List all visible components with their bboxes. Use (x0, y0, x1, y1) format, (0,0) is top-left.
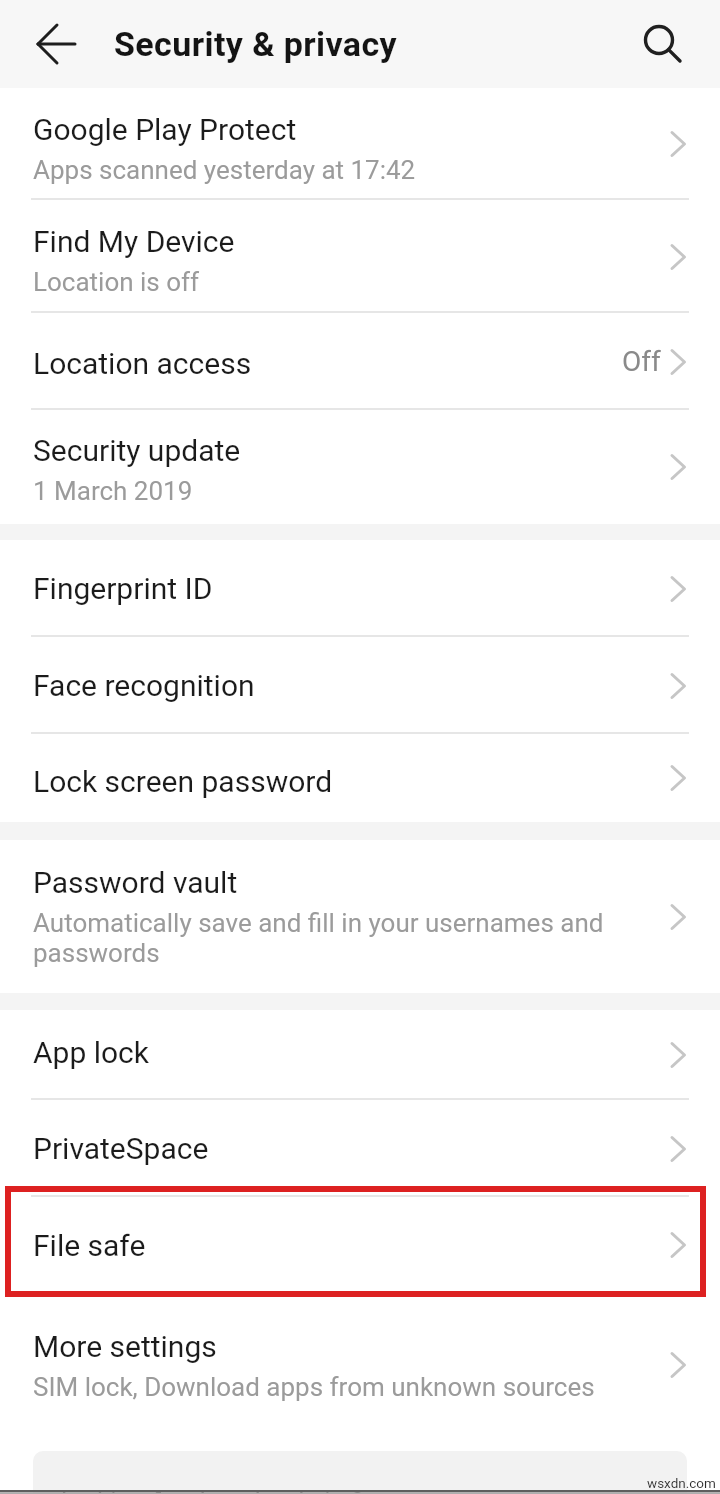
staticText: Automatically save and fill in your user… (33, 908, 604, 968)
staticText: 1 March 2019 (33, 476, 193, 506)
button[interactable]: File safe (0, 1197, 720, 1293)
staticText: Fingerprint ID (33, 571, 213, 606)
button[interactable]: More settings (0, 1293, 720, 1437)
staticText: Off (622, 345, 661, 378)
staticText: Password vault (33, 865, 238, 900)
staticText: Security & privacy (114, 24, 398, 64)
staticText: wsxdn.com (647, 1475, 716, 1491)
staticText: Find My Device (33, 224, 235, 259)
button[interactable] (638, 16, 694, 72)
staticText: Lock screen password (33, 764, 333, 799)
staticText: Apps scanned yesterday at 17:42 (33, 155, 416, 185)
staticText: Security update (33, 433, 241, 468)
staticText: More settings (33, 1329, 217, 1364)
staticText: PrivateSpace (33, 1131, 209, 1166)
staticText: App lock (33, 1035, 150, 1070)
button[interactable]: Google Play Protect (0, 88, 720, 200)
button[interactable]: Password vault (0, 840, 720, 993)
staticText: Location is off (33, 267, 200, 297)
button[interactable]: PrivateSpace (0, 1100, 720, 1197)
staticText: SIM lock, Download apps from unknown sou… (33, 1372, 595, 1402)
button[interactable]: Lock screen password (0, 734, 720, 822)
button[interactable] (24, 16, 80, 72)
button[interactable]: App lock (0, 1010, 720, 1100)
staticText: Face recognition (33, 668, 255, 703)
button[interactable]: Find My Device (0, 200, 720, 313)
button[interactable]: Location access (0, 313, 720, 410)
button[interactable]: Fingerprint ID (0, 540, 720, 637)
staticText: looking for downloads in ? (61, 1487, 364, 1494)
button[interactable]: Security update (0, 410, 720, 524)
staticText: Location access (33, 346, 252, 381)
staticText: Google Play Protect (33, 112, 297, 147)
staticText: File safe (33, 1228, 146, 1263)
button[interactable]: Face recognition (0, 637, 720, 734)
